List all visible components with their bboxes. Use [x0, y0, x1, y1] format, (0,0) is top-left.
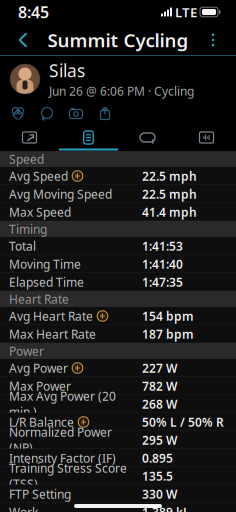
staticText: Total: [9, 238, 36, 254]
staticText: Avg Moving Speed: [9, 186, 112, 202]
staticText: LTE: [175, 3, 197, 21]
staticText: 330 W: [142, 486, 177, 502]
button[interactable]: Like: [9, 104, 27, 122]
staticText: Heart Rate: [9, 291, 69, 307]
staticText: Normalized Power (NP): [9, 424, 112, 456]
button[interactable]: Laps: [118, 124, 177, 150]
staticText: Power: [9, 343, 44, 359]
staticText: Moving Time: [9, 256, 81, 272]
button[interactable]: Share: [96, 104, 114, 122]
button[interactable]: Back: [8, 24, 38, 56]
staticText: 8:45: [18, 1, 49, 23]
staticText: Work: [9, 504, 38, 512]
button[interactable]: Statistics: [59, 124, 118, 150]
button[interactable]: Photos: [67, 104, 85, 122]
staticText: 154 bpm: [142, 308, 194, 324]
button[interactable]: More options: [198, 24, 228, 56]
staticText: FTP Setting: [9, 486, 71, 502]
staticText: Summit Cycling: [47, 28, 188, 52]
staticText: Training Stress Score (TSS): [9, 460, 127, 492]
staticText: 1:41:53: [142, 238, 183, 254]
button[interactable]: Silas: [0, 56, 236, 102]
staticText: 295 W: [142, 432, 177, 448]
staticText: 268 W: [142, 396, 177, 412]
staticText: 782 W: [142, 378, 177, 394]
staticText: 1,389 kJ: [142, 504, 187, 512]
staticText: Elapsed Time: [9, 274, 84, 290]
staticText: Max Avg Power (20 min.): [9, 388, 116, 420]
staticText: 22.5 mph: [142, 168, 197, 184]
staticText: Jun 26 @ 6:06 PM · Cycling: [49, 83, 194, 99]
staticText: Intensity Factor (IF): [9, 450, 116, 466]
staticText: Speed: [9, 151, 44, 167]
staticText: Avg Power: [9, 360, 68, 376]
staticText: 135.5: [142, 468, 173, 484]
staticText: Avg Heart Rate: [9, 308, 93, 324]
staticText: Timing: [9, 221, 47, 237]
staticText: L/R Balance: [9, 414, 74, 430]
staticText: 1:41:40: [142, 256, 183, 272]
staticText: Max Heart Rate: [9, 326, 96, 342]
button[interactable]: Comment: [38, 104, 56, 122]
staticText: Max Power: [9, 378, 71, 394]
staticText: 1:47:35: [142, 274, 183, 290]
staticText: 187 bpm: [142, 326, 194, 342]
button[interactable]: Analysis: [177, 124, 236, 150]
staticText: 41.4 mph: [142, 204, 197, 220]
staticText: 22.5 mph: [142, 186, 197, 202]
staticText: 227 W: [142, 360, 177, 376]
staticText: 0.895: [142, 450, 173, 466]
staticText: Max Speed: [9, 204, 71, 220]
staticText: 50% L / 50% R: [142, 414, 224, 430]
staticText: Silas: [49, 59, 85, 82]
staticText: Avg Speed: [9, 168, 68, 184]
button[interactable]: Map: [0, 124, 59, 150]
